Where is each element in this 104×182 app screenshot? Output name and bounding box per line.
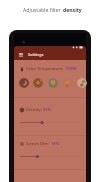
staticText: 34% xyxy=(43,107,52,113)
button[interactable]: Density: xyxy=(14,106,86,114)
button[interactable]: Filter preset xyxy=(19,78,29,88)
staticText: Adjustable filter xyxy=(23,7,63,14)
staticText: density xyxy=(63,7,82,14)
staticText: Screen Dim: xyxy=(26,141,51,147)
staticText: Density: xyxy=(26,107,43,113)
button[interactable]: Filter preset xyxy=(33,78,43,88)
button[interactable]: Filter preset xyxy=(62,78,72,88)
button[interactable]: Color Temperature: xyxy=(14,65,86,73)
staticText: Color Temperature: xyxy=(26,66,65,72)
staticText: 18% xyxy=(51,141,60,147)
button[interactable]: Adjust value xyxy=(14,119,86,126)
button[interactable]: Filter preset xyxy=(77,78,87,88)
button[interactable]: Screen Dim: xyxy=(14,140,86,148)
staticText: Settings xyxy=(28,52,44,58)
button[interactable]: Filter preset xyxy=(48,78,58,88)
button[interactable]: Adjust value xyxy=(14,153,86,160)
button[interactable]: Open navigation menu xyxy=(16,49,26,60)
staticText: 1900K xyxy=(65,66,77,72)
